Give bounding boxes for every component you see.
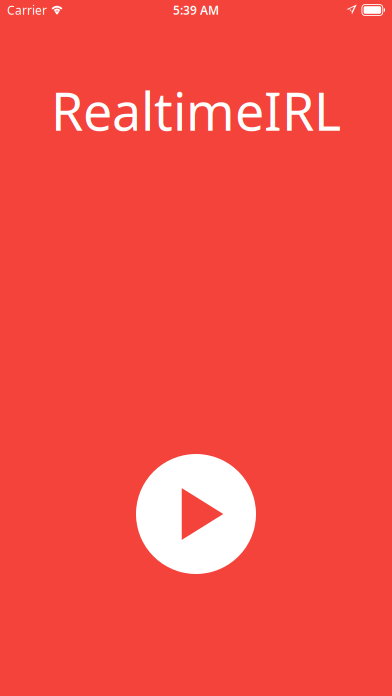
staticText: 5:39 AM [173, 2, 219, 18]
button[interactable]: Start stream [136, 454, 256, 574]
staticText: RealtimeIRL [51, 76, 341, 145]
staticText: Carrier [7, 2, 47, 18]
